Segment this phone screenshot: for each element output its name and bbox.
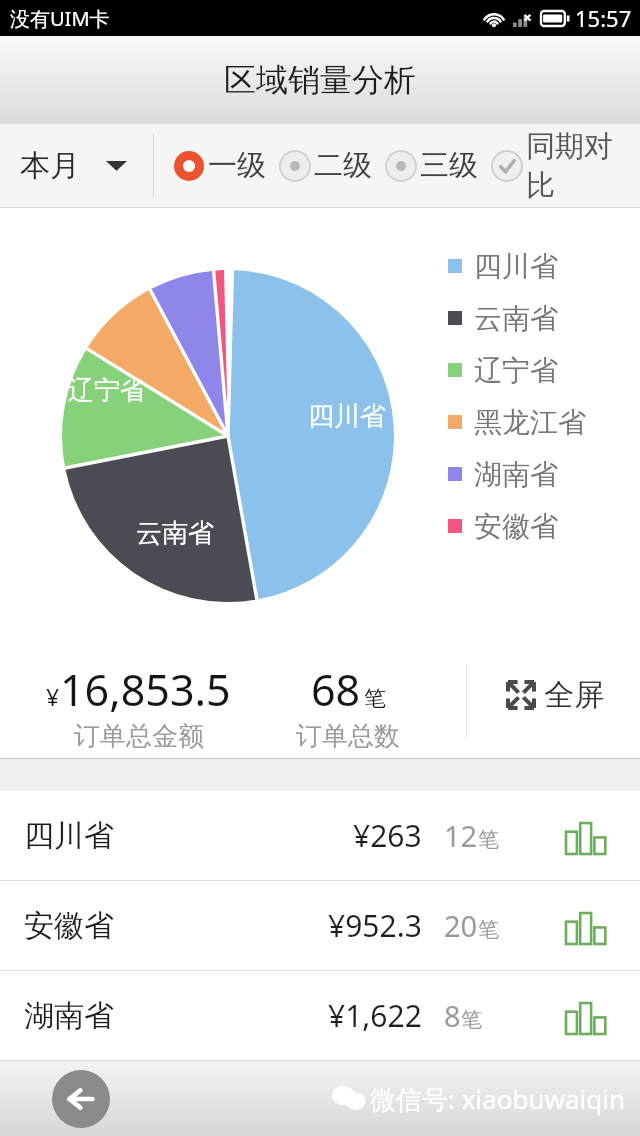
staticText: 8 bbox=[444, 996, 461, 1035]
staticText: 16,853.5 bbox=[60, 660, 231, 719]
button[interactable]: 同期对比 bbox=[484, 124, 640, 207]
button[interactable]: 三级 bbox=[378, 124, 484, 207]
staticText: 四川省 bbox=[24, 817, 114, 855]
staticText: 全屏 bbox=[544, 676, 604, 714]
button[interactable]: 云南省 bbox=[448, 292, 558, 344]
staticText: 12 bbox=[444, 816, 478, 855]
staticText: ¥263 bbox=[353, 815, 422, 856]
staticText: 云南省 bbox=[474, 301, 558, 336]
button[interactable]: 四川省 bbox=[0, 791, 640, 880]
staticText: ¥952.3 bbox=[328, 905, 422, 946]
staticText: 云南省 bbox=[136, 517, 214, 550]
button[interactable]: 湖南省 bbox=[0, 971, 640, 1060]
staticText: 湖南省 bbox=[474, 457, 558, 492]
button[interactable]: 四川省 bbox=[448, 240, 558, 292]
button[interactable]: 辽宁省 bbox=[448, 344, 558, 396]
button[interactable]: 本月 bbox=[0, 124, 153, 207]
staticText: 笔 bbox=[461, 1007, 482, 1033]
staticText: 辽宁省 bbox=[68, 374, 146, 407]
staticText: 订单总数 bbox=[296, 720, 400, 753]
staticText: 湖南省 bbox=[24, 997, 114, 1035]
button[interactable]: 安徽省 bbox=[448, 500, 558, 552]
staticText: 微信号: xiaobuwaiqin bbox=[370, 1081, 626, 1117]
staticText: 15:57 bbox=[575, 3, 632, 33]
staticText: 笔 bbox=[364, 685, 386, 713]
staticText: 本月 bbox=[20, 147, 80, 185]
staticText: ¥1,622 bbox=[328, 995, 422, 1036]
staticText: 20 bbox=[444, 906, 478, 945]
staticText: ¥ bbox=[46, 681, 60, 712]
button[interactable]: Back bbox=[52, 1070, 110, 1128]
staticText: 四川省 bbox=[308, 400, 386, 433]
staticText: 没有UIM卡 bbox=[10, 5, 110, 32]
staticText: 同期对比 bbox=[526, 128, 634, 204]
staticText: 区域销量分析 bbox=[224, 60, 416, 100]
staticText: 二级 bbox=[314, 147, 372, 184]
button[interactable]: 二级 bbox=[272, 124, 378, 207]
staticText: 三级 bbox=[420, 147, 478, 184]
staticText: 订单总金额 bbox=[74, 720, 204, 753]
staticText: 辽宁省 bbox=[474, 353, 558, 388]
staticText: 笔 bbox=[478, 917, 499, 943]
staticText: 一级 bbox=[208, 147, 266, 184]
staticText: 四川省 bbox=[474, 249, 558, 284]
button[interactable]: 湖南省 bbox=[448, 448, 558, 500]
button[interactable]: 全屏 bbox=[502, 672, 608, 718]
staticText: 黑龙江省 bbox=[474, 405, 586, 440]
staticText: 安徽省 bbox=[24, 907, 114, 945]
button[interactable]: 黑龙江省 bbox=[448, 396, 586, 448]
button[interactable]: 安徽省 bbox=[0, 881, 640, 970]
button[interactable]: 一级 bbox=[166, 124, 272, 207]
staticText: 68 bbox=[311, 660, 361, 719]
staticText: 安徽省 bbox=[474, 509, 558, 544]
staticText: 笔 bbox=[478, 827, 499, 853]
